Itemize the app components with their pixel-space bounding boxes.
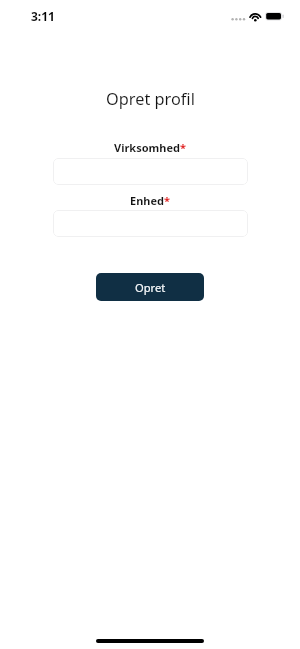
other: Signal, Wi-Fi and battery status [0,0,300,32]
button[interactable]: Enhed input field [53,210,248,237]
button[interactable]: Opret [96,273,204,301]
staticText: Enhed [130,193,164,208]
staticText: Opret profil [106,88,195,110]
staticText: Virksomhed [114,140,180,155]
button[interactable]: Virksomhed input field [53,158,248,185]
staticText: * [180,140,186,155]
staticText: Opret [135,280,166,295]
staticText: * [164,193,170,208]
staticText: 3:11 [31,8,55,24]
